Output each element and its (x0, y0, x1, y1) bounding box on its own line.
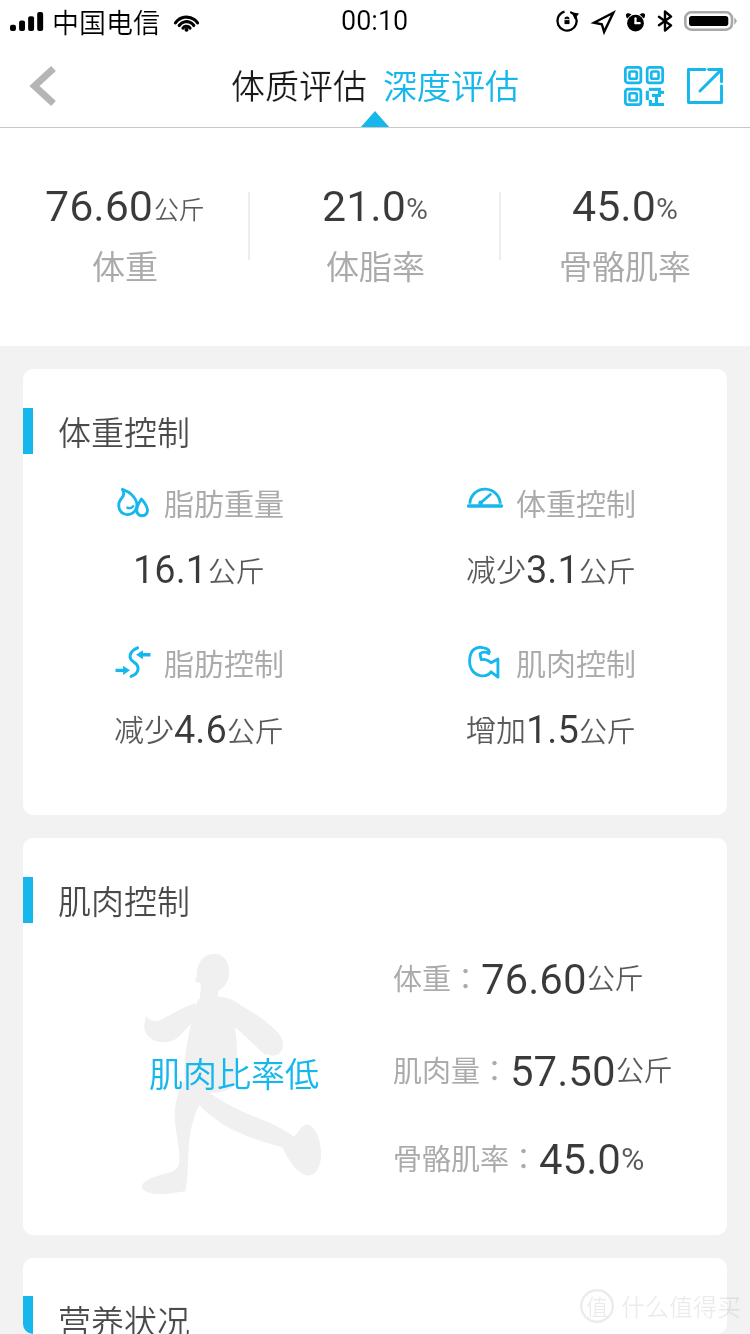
staticText: % (621, 1140, 645, 1178)
staticText: 公斤 (154, 190, 205, 226)
button[interactable]: 深度评估 (383, 60, 519, 109)
staticText: 公斤 (579, 710, 636, 751)
staticText: 中国电信 (52, 2, 160, 41)
button[interactable]: 体重控制 (375, 480, 727, 593)
staticText: 深度评估 (383, 60, 519, 109)
staticText: 肌肉控制 (516, 640, 636, 683)
staticText: 公斤 (227, 710, 284, 751)
staticText: 肌肉量： (393, 1048, 510, 1090)
staticText: 体质评估 (231, 60, 367, 109)
staticText: 值 (586, 1289, 609, 1321)
staticText: 76.60 (45, 181, 154, 231)
staticText: 76.60 (481, 955, 587, 1004)
button[interactable]: 脂肪重量 (23, 480, 375, 593)
button[interactable]: 脂肪控制 (23, 640, 375, 753)
staticText: 体重控制 (516, 480, 636, 523)
staticText: 4.6 (174, 708, 227, 753)
staticText: 减少 (114, 706, 174, 749)
staticText: 00:10 (341, 5, 409, 37)
staticText: 57.50 (510, 1047, 616, 1096)
staticText: 16.1 (133, 548, 208, 593)
staticText: 3.1 (526, 548, 579, 593)
button[interactable]: 体质评估 (231, 60, 367, 109)
staticText: 减少 (466, 546, 526, 589)
staticText: 公斤 (616, 1049, 673, 1090)
staticText: 公斤 (579, 550, 636, 591)
staticText: % (656, 191, 678, 226)
button[interactable]: Share (677, 57, 733, 113)
staticText: 体重控制 (58, 407, 190, 455)
staticText: 公斤 (587, 957, 644, 998)
staticText: 营养状况 (58, 1296, 190, 1334)
staticText: % (406, 191, 428, 226)
staticText: 45.0 (572, 181, 656, 231)
staticText: 增加 (466, 706, 526, 749)
staticText: 脂肪重量 (164, 480, 284, 523)
staticText: 公斤 (208, 550, 265, 591)
staticText: 什么值得买 (621, 1288, 741, 1323)
button[interactable]: Back (16, 58, 72, 114)
staticText: 1.5 (526, 708, 579, 753)
staticText: 体重 (92, 241, 158, 289)
staticText: 脂肪控制 (164, 640, 284, 683)
staticText: 45.0 (539, 1135, 621, 1184)
staticText: 骨骼肌率： (393, 1136, 539, 1178)
staticText: 肌肉控制 (58, 876, 190, 924)
staticText: 肌肉比率低 (149, 1048, 319, 1097)
staticText: 体重： (393, 956, 481, 998)
button[interactable]: 肌肉控制 (375, 640, 727, 753)
staticText: 体脂率 (326, 241, 425, 289)
button[interactable]: QR code scan (616, 57, 672, 113)
staticText: 骨骼肌率 (559, 241, 691, 289)
staticText: 21.0 (322, 181, 406, 231)
